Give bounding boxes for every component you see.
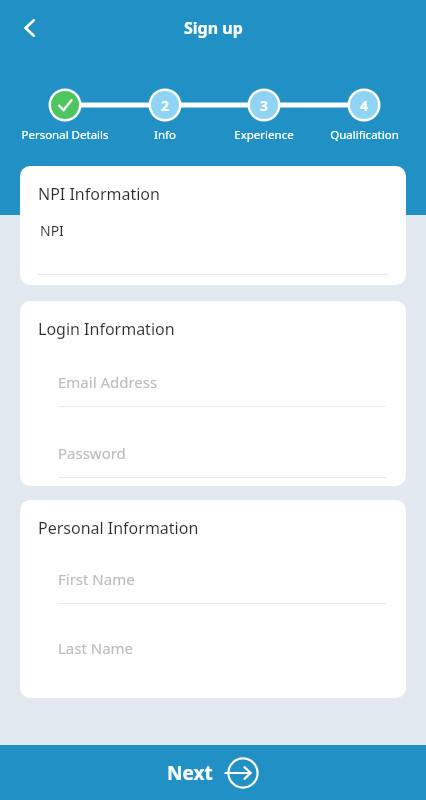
staticText: First Name	[58, 569, 135, 589]
staticText: Sign up	[184, 17, 243, 39]
button[interactable]: Experience	[214, 127, 314, 143]
staticText: Experience	[234, 127, 294, 143]
staticText: Login Information	[38, 318, 175, 340]
button[interactable]: Qualification	[308, 127, 420, 143]
staticText: Next	[167, 760, 213, 786]
button[interactable]: Back	[8, 6, 52, 50]
staticText: NPI	[40, 221, 64, 240]
button[interactable]: Personal Details	[9, 127, 121, 143]
staticText: Personal Details	[21, 127, 109, 143]
staticText: Password	[58, 443, 126, 463]
button[interactable]: Info	[135, 127, 195, 143]
staticText: 3	[260, 96, 269, 115]
staticText: Last Name	[58, 638, 134, 658]
button[interactable]: Login Information	[20, 301, 406, 486]
staticText: Personal Information	[38, 517, 199, 539]
staticText: 2	[161, 96, 170, 115]
button[interactable]: Next	[0, 745, 426, 800]
staticText: NPI Information	[38, 183, 160, 205]
staticText: Qualification	[330, 127, 399, 143]
staticText: Info	[154, 127, 176, 143]
button[interactable]: Personal Information	[20, 500, 406, 698]
button[interactable]: NPI Information	[20, 166, 406, 285]
staticText: Email Address	[58, 372, 158, 392]
staticText: 4	[360, 96, 369, 115]
